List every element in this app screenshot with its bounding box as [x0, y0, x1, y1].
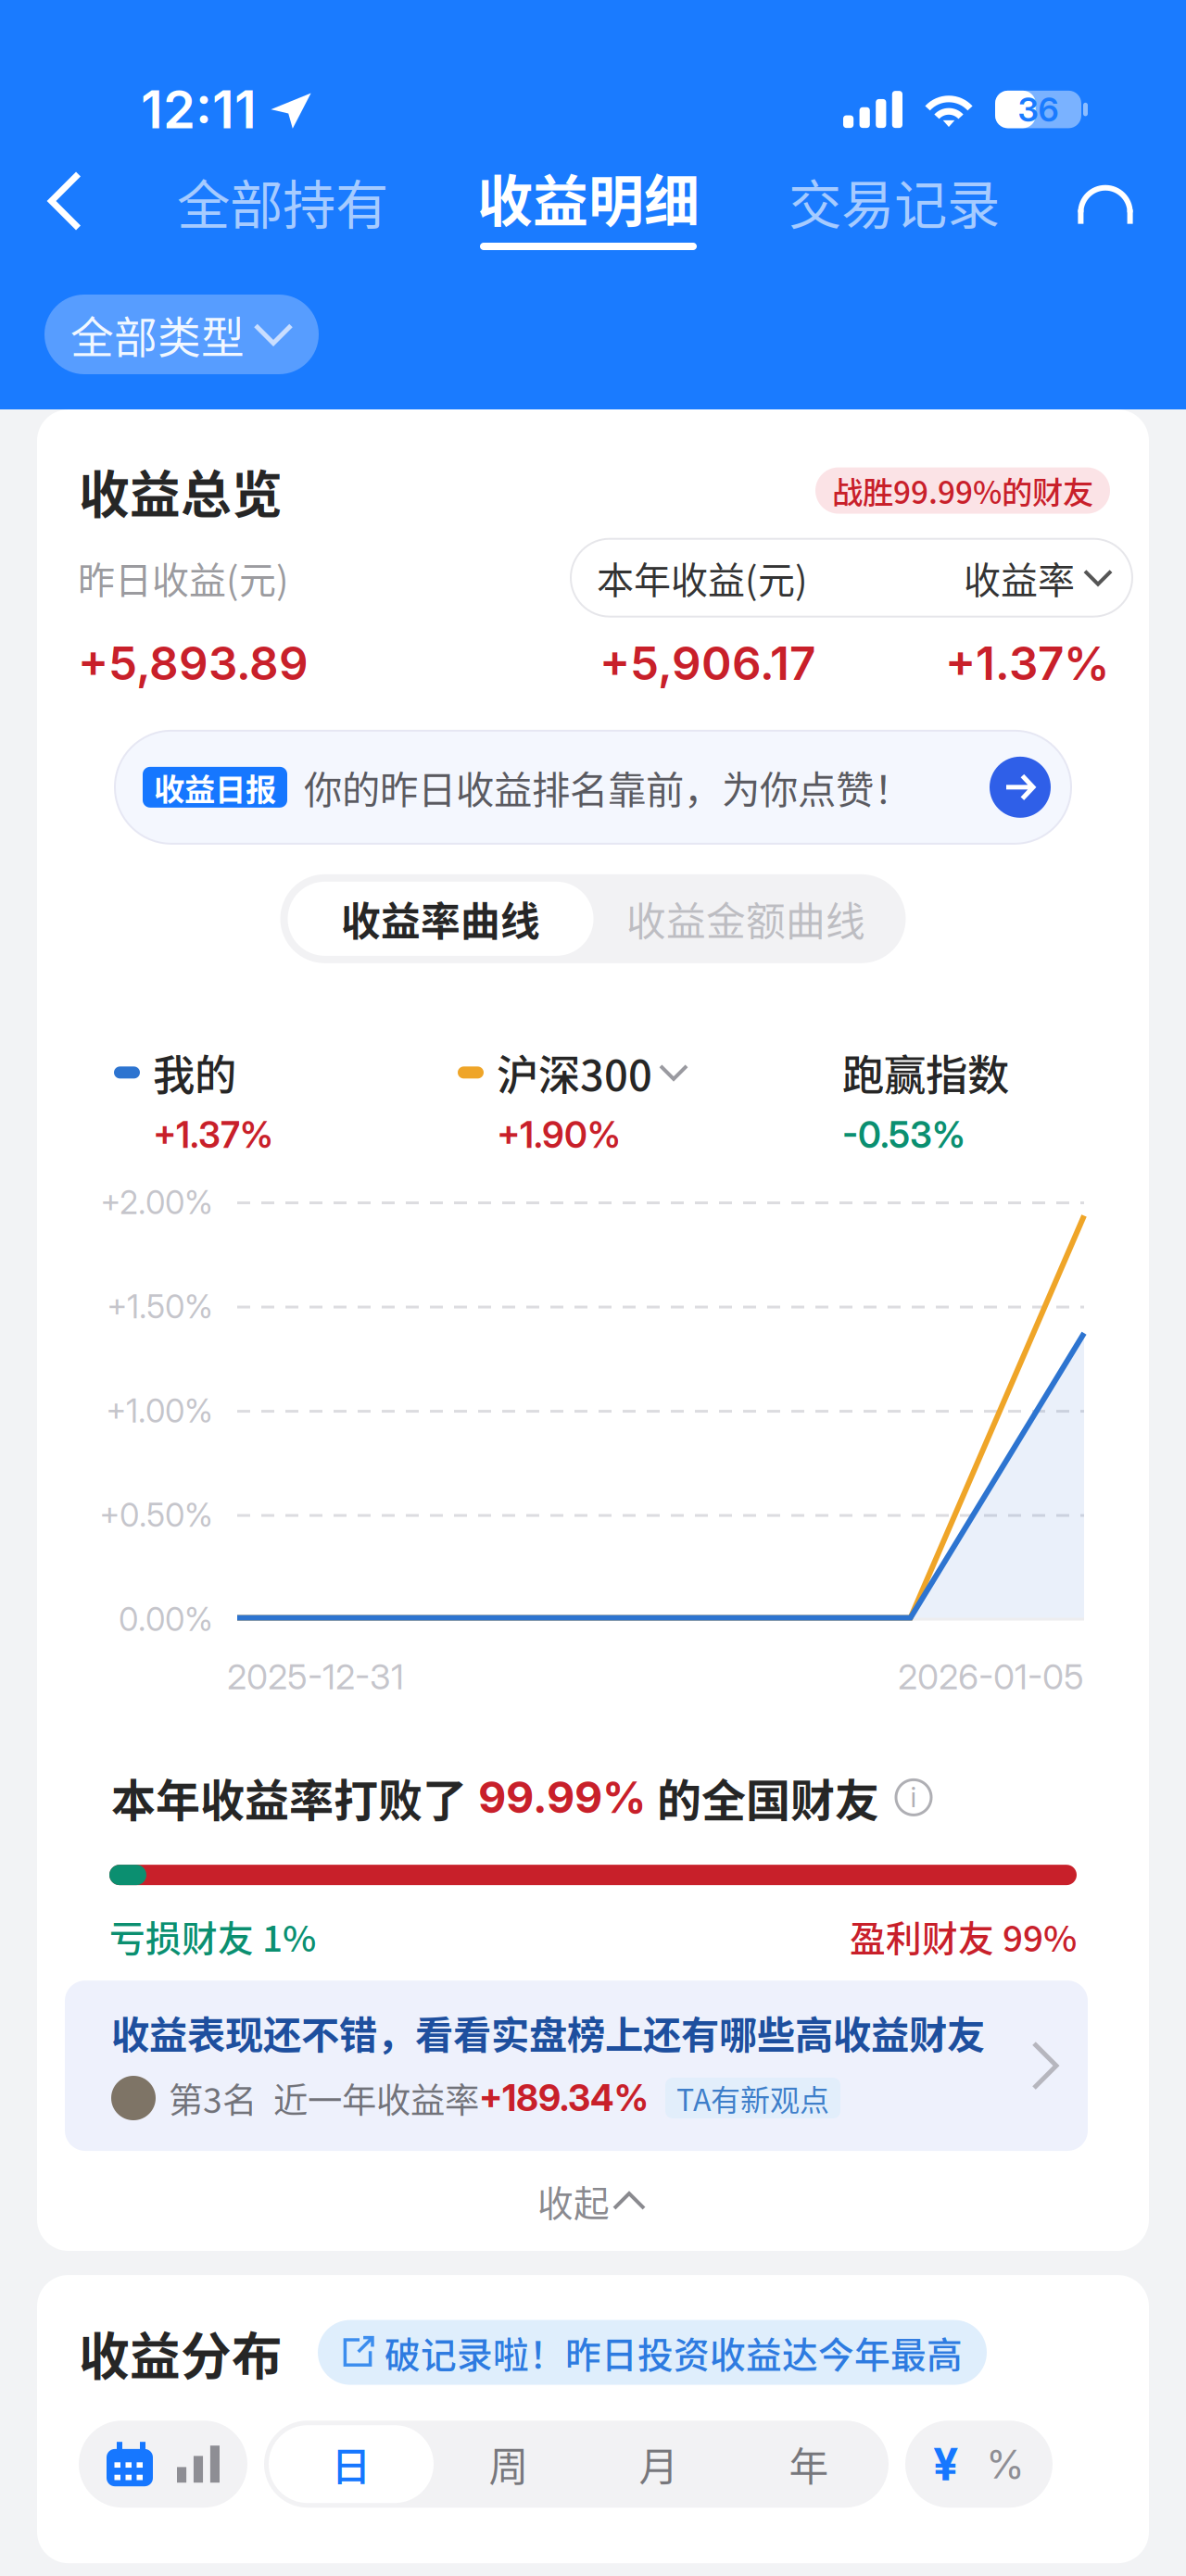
staticText: +0.50%: [99, 1496, 213, 1534]
staticText: %: [986, 2440, 1025, 2488]
staticText: 12:11: [141, 78, 257, 141]
staticText: 全部类型: [70, 303, 245, 366]
staticText: 周: [489, 2435, 529, 2493]
staticText: +2.00%: [100, 1183, 213, 1222]
staticText: 的全国财友: [657, 1765, 879, 1830]
staticText: ¥: [933, 2437, 958, 2491]
staticText: +1.37%: [153, 1113, 273, 1157]
staticText: 破记录啦！昨日投资收益达今年最高: [385, 2326, 963, 2378]
staticText: 你的昨日收益排名靠前，为你点赞！: [304, 759, 912, 815]
staticText: +1.90%: [497, 1113, 621, 1157]
button[interactable]: 全部持有: [130, 146, 435, 256]
staticText: 2026-01-05: [898, 1656, 1084, 1698]
staticText: 昨日收益(元): [78, 551, 289, 604]
staticText: 第3名: [169, 2073, 257, 2123]
staticText: 亏损财友 1%: [109, 1910, 316, 1962]
staticText: 盈利财友 99%: [850, 1910, 1077, 1962]
button[interactable]: 破记录啦！昨日投资收益达今年最高: [318, 2320, 987, 2385]
staticText: i: [910, 1781, 917, 1814]
staticText: 2025-12-31: [227, 1656, 404, 1698]
staticText: 收益率: [964, 551, 1075, 604]
staticText: 全部持有: [177, 163, 388, 239]
button[interactable]: 全部类型: [44, 295, 319, 374]
staticText: 收益总览: [79, 454, 283, 527]
button[interactable]: 收益明细: [435, 146, 741, 256]
staticText: +5,906.17: [599, 636, 815, 691]
staticText: 近一年收益率: [273, 2073, 479, 2123]
staticText: +1.50%: [107, 1287, 213, 1326]
staticText: 年: [789, 2435, 829, 2493]
staticText: 日: [331, 2435, 371, 2493]
button[interactable]: 月: [584, 2425, 734, 2503]
staticText: 沪深300: [497, 1042, 652, 1103]
staticText: TA有新观点: [676, 2077, 829, 2119]
staticText: 收益分布: [79, 2316, 283, 2389]
staticText: +5,893.89: [78, 636, 309, 691]
staticText: 收益日报: [154, 765, 276, 810]
button[interactable]: 返回: [0, 146, 130, 256]
button[interactable]: 年: [734, 2425, 884, 2503]
staticText: 交易记录: [789, 163, 1000, 239]
staticText: 收益表现还不错，看看实盘榜上还有哪些高收益财友: [111, 2005, 985, 2060]
staticText: 本年收益(元): [597, 551, 808, 604]
button[interactable]: 收益率曲线: [288, 882, 593, 956]
staticText: +1.37%: [945, 636, 1110, 691]
staticText: 99.99%: [478, 1771, 646, 1824]
button[interactable]: 客服: [1062, 146, 1149, 256]
button[interactable]: 收起: [37, 2151, 1149, 2251]
staticText: 战胜99.99%的财友: [832, 468, 1093, 513]
staticText: 收益明细: [477, 157, 700, 238]
staticText: 收益金额曲线: [626, 890, 865, 947]
staticText: 收起: [537, 2175, 610, 2227]
staticText: 我的: [153, 1042, 236, 1103]
button[interactable]: 收益金额曲线: [593, 882, 898, 956]
staticText: 本年收益率打败了: [111, 1765, 467, 1830]
button[interactable]: 收益日报: [115, 731, 1071, 844]
staticText: 收益率曲线: [341, 890, 540, 947]
staticText: +189.34%: [479, 2076, 649, 2120]
staticText: +1.00%: [106, 1391, 213, 1430]
button[interactable]: 收益表现还不错，看看实盘榜上还有哪些高收益财友: [65, 1980, 1088, 2151]
staticText: 36: [1018, 89, 1059, 130]
button[interactable]: 日: [269, 2425, 434, 2503]
button[interactable]: 交易记录: [741, 146, 1047, 256]
staticText: 月: [639, 2435, 679, 2493]
staticText: -0.53%: [842, 1113, 965, 1157]
staticText: 跑赢指数: [842, 1042, 1009, 1103]
staticText: 0.00%: [119, 1600, 213, 1639]
button[interactable]: 周: [434, 2425, 584, 2503]
